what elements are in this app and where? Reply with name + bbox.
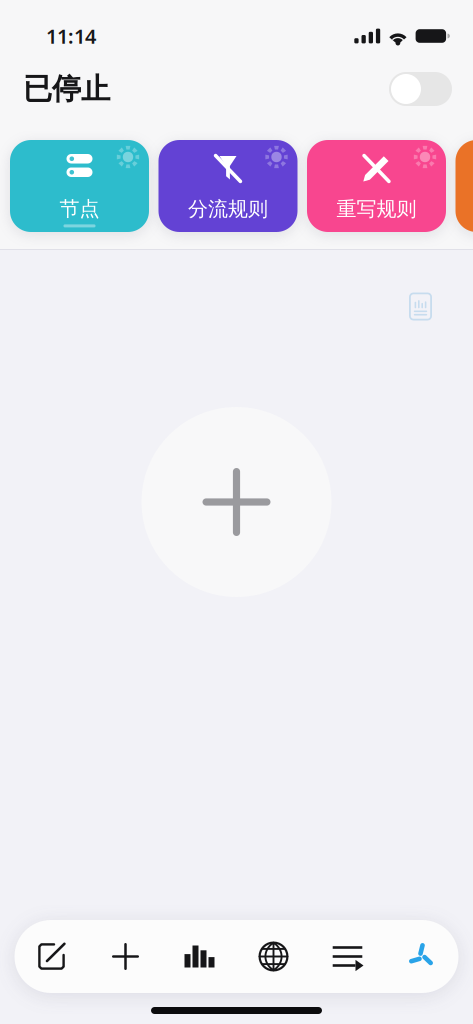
button[interactable]: 统计报告	[408, 292, 433, 321]
button[interactable]: 网络诊断	[236, 920, 310, 993]
staticText: 节点	[59, 196, 99, 221]
button[interactable]: 添加配置	[141, 407, 331, 597]
staticText: 分流规则	[188, 197, 268, 221]
button[interactable]: 节点	[10, 140, 149, 232]
staticText: 已停止	[23, 71, 110, 107]
button[interactable]: 更多	[384, 920, 458, 993]
button[interactable]: 新建配置	[14, 920, 88, 993]
button[interactable]: 启动代理	[389, 72, 452, 106]
button[interactable]: MitM	[455, 140, 473, 232]
button[interactable]: 添加	[88, 920, 162, 993]
button[interactable]: 请求日志	[310, 920, 384, 993]
staticText: 11:14	[46, 23, 96, 49]
button[interactable]: 重写规则	[307, 140, 446, 232]
button[interactable]: 分流规则	[158, 140, 297, 232]
button[interactable]: 流量统计	[162, 920, 236, 993]
staticText: 重写规则	[336, 197, 416, 221]
